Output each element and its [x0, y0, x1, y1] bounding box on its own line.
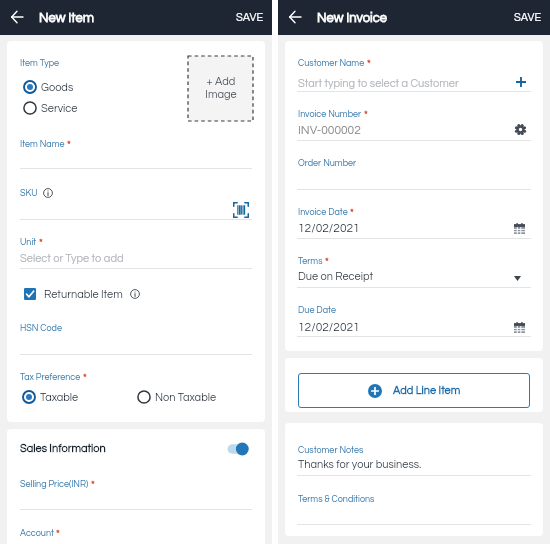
- button[interactable]: Add customer: [511, 72, 530, 91]
- staticText: Non Taxable: [155, 392, 217, 403]
- button[interactable]: Add Line Item: [298, 373, 530, 408]
- staticText: Selling Price(INR): [20, 480, 89, 489]
- button[interactable]: Pick invoice date: [512, 221, 526, 235]
- staticText: Sales Information: [20, 443, 106, 454]
- staticText: SAVE: [236, 12, 264, 23]
- staticText: INV-000002: [298, 124, 361, 136]
- staticText: Thanks for your business.: [298, 459, 422, 470]
- button[interactable]: Non Taxable: [137, 390, 217, 404]
- staticText: SAVE: [514, 12, 542, 23]
- staticText: Due Date: [298, 306, 336, 315]
- staticText: Start typing to select a Customer: [298, 78, 459, 89]
- staticText: Returnable Item: [44, 289, 123, 300]
- staticText: *: [56, 529, 60, 539]
- staticText: Goods: [41, 82, 74, 93]
- staticText: Add Line Item: [393, 385, 461, 396]
- staticText: Customer Name: [298, 59, 365, 68]
- button[interactable]: Returnable Item: [24, 288, 140, 300]
- staticText: *: [367, 59, 371, 69]
- button[interactable]: Service: [23, 101, 78, 115]
- button[interactable]: Add image: [188, 56, 253, 121]
- button[interactable]: SAVE: [503, 3, 550, 32]
- staticText: Select or Type to add: [20, 253, 124, 264]
- staticText: Invoice Date: [298, 208, 348, 217]
- staticText: Terms & Conditions: [298, 495, 375, 504]
- staticText: + Add Image: [205, 76, 237, 101]
- staticText: New Item: [39, 11, 94, 24]
- button[interactable]: SAVE: [225, 3, 272, 32]
- staticText: *: [39, 238, 43, 248]
- button[interactable]: Back: [278, 0, 312, 34]
- staticText: Due on Receipt: [298, 271, 374, 282]
- staticText: Item Type: [20, 59, 60, 68]
- button[interactable]: Invoice number settings: [513, 122, 527, 136]
- button[interactable]: Back: [0, 0, 34, 34]
- staticText: SKU: [20, 189, 38, 198]
- staticText: Terms: [298, 257, 323, 266]
- staticText: HSN Code: [20, 324, 62, 333]
- staticText: Order Number: [298, 159, 357, 168]
- staticText: Customer Notes: [298, 446, 364, 455]
- button[interactable]: Taxable: [22, 390, 79, 404]
- staticText: New Invoice: [317, 11, 388, 24]
- button[interactable]: Select terms: [510, 271, 525, 286]
- staticText: Unit: [20, 238, 37, 247]
- staticText: 12/02/2021: [298, 321, 360, 333]
- staticText: 12/02/2021: [298, 222, 360, 234]
- staticText: Item Name: [20, 140, 65, 149]
- staticText: *: [350, 208, 354, 218]
- button[interactable]: Pick due date: [512, 320, 526, 334]
- staticText: *: [83, 373, 87, 383]
- staticText: Account: [20, 529, 54, 538]
- staticText: Tax Preference: [20, 373, 81, 382]
- button[interactable]: Scan barcode: [232, 201, 249, 218]
- staticText: Taxable: [40, 392, 79, 403]
- staticText: *: [67, 140, 71, 150]
- staticText: *: [91, 480, 95, 490]
- staticText: Service: [41, 103, 78, 114]
- staticText: Invoice Number: [298, 110, 362, 119]
- button[interactable]: Toggle Sales Information: [220, 435, 250, 463]
- staticText: *: [325, 257, 329, 267]
- button[interactable]: Goods: [23, 80, 74, 94]
- staticText: *: [364, 110, 368, 120]
